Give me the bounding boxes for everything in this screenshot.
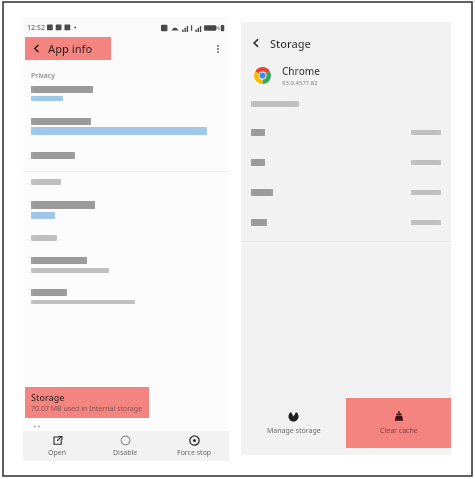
- staticText: Privacy: [31, 71, 55, 81]
- button[interactable]: Clear cache: [346, 398, 451, 448]
- staticText: 70.07 MB used in Internal storage: [31, 404, 143, 414]
- staticText: Open: [48, 448, 67, 458]
- staticText: 93.0.4577.82: [282, 79, 318, 87]
- button[interactable]: Back: [247, 34, 265, 52]
- button[interactable]: Open: [23, 431, 91, 461]
- staticText: Force stop: [177, 448, 212, 458]
- staticText: Disable: [113, 448, 138, 458]
- staticText: Manage storage: [267, 426, 321, 436]
- staticText: Storage: [31, 391, 65, 403]
- staticText: App info: [48, 41, 93, 56]
- button[interactable]: App info: [25, 37, 111, 60]
- button[interactable]: Manage storage: [241, 397, 346, 449]
- staticText: Clear cache: [380, 426, 418, 436]
- button[interactable]: Force stop: [160, 431, 229, 461]
- button[interactable]: Disable: [91, 431, 160, 461]
- button[interactable]: More options: [207, 38, 229, 60]
- staticText: 82%: [208, 24, 220, 32]
- button[interactable]: Storage: [25, 387, 149, 418]
- staticText: Storage: [270, 36, 311, 51]
- staticText: Chrome: [282, 64, 320, 78]
- staticText: 12:52: [27, 23, 45, 33]
